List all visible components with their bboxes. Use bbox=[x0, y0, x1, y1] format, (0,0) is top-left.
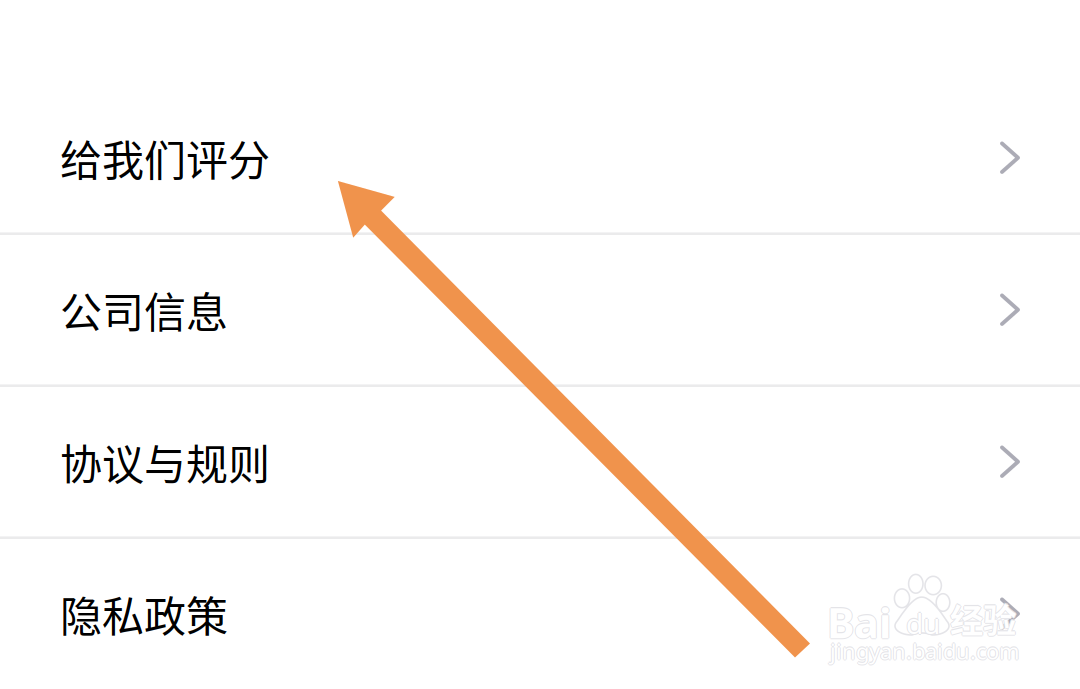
button[interactable]: 公司信息 bbox=[0, 234, 1080, 386]
staticText: 给我们评分 bbox=[60, 127, 270, 188]
button[interactable]: 隐私政策 bbox=[0, 538, 1080, 689]
staticText: 协议与规则 bbox=[60, 431, 270, 492]
staticText: 公司信息 bbox=[60, 279, 228, 340]
staticText: 隐私政策 bbox=[60, 583, 228, 644]
button[interactable]: 协议与规则 bbox=[0, 386, 1080, 538]
button[interactable]: 给我们评分 bbox=[0, 82, 1080, 234]
